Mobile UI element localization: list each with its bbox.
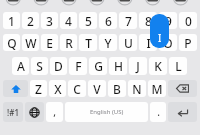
staticText: 7 (125, 13, 132, 29)
button[interactable]: F (69, 57, 87, 75)
staticText: A (17, 58, 25, 74)
staticText: 2 (27, 13, 34, 29)
button[interactable]: B (108, 80, 126, 97)
staticText: English (US) (90, 108, 124, 116)
staticText: 6 (105, 13, 112, 29)
button[interactable]: Z (30, 80, 47, 97)
button[interactable]: Shift (3, 80, 28, 97)
button[interactable]: 0 (179, 12, 197, 29)
staticText: T (85, 35, 92, 51)
staticText: R (65, 35, 73, 51)
staticText: 9 (165, 13, 172, 29)
button[interactable]: K (149, 57, 167, 75)
button[interactable]: M (148, 80, 166, 97)
button[interactable]: I (150, 14, 169, 48)
staticText: !#1 (7, 107, 19, 118)
staticText: D (54, 58, 63, 74)
staticText: H (114, 58, 123, 74)
button[interactable]: R (60, 34, 77, 51)
staticText: 8 (145, 13, 152, 29)
button[interactable]: Toolbar action 7 (173, 0, 189, 7)
button[interactable]: X (49, 80, 66, 97)
button[interactable]: S (31, 57, 48, 75)
button[interactable]: 8 (139, 12, 157, 29)
staticText: N (132, 81, 142, 97)
button[interactable]: C (68, 80, 86, 97)
button[interactable]: V (88, 80, 106, 97)
button[interactable]: Q (3, 34, 20, 51)
button[interactable]: O (159, 34, 177, 51)
button[interactable]: Toolbar action 5 (119, 0, 135, 7)
staticText: 5 (85, 13, 92, 29)
button[interactable]: Y (99, 34, 117, 51)
staticText: , (53, 105, 56, 119)
button[interactable]: Toolbar action 3 (65, 0, 81, 7)
staticText: M (151, 81, 163, 97)
staticText: Z (35, 81, 42, 97)
staticText: O (163, 35, 173, 51)
staticText: I (158, 31, 162, 45)
button[interactable]: 3 (41, 12, 58, 29)
button[interactable]: U (119, 34, 137, 51)
button[interactable]: P (179, 34, 197, 51)
staticText: B (113, 81, 121, 97)
button[interactable]: J (129, 57, 147, 75)
button[interactable]: Toolbar action 4 (92, 0, 108, 7)
staticText: 4 (65, 13, 72, 29)
other: Change language (29, 107, 40, 118)
button[interactable]: . (150, 102, 166, 122)
button[interactable]: 6 (99, 12, 117, 29)
staticText: I (146, 35, 151, 51)
button[interactable]: D (50, 57, 67, 75)
button[interactable]: 9 (159, 12, 177, 29)
staticText: S (36, 58, 43, 74)
button[interactable]: A (12, 57, 29, 75)
staticText: C (73, 81, 81, 97)
button[interactable]: Backspace (168, 80, 197, 97)
button[interactable]: 4 (60, 12, 77, 29)
button[interactable]: E (41, 34, 58, 51)
button[interactable]: G (89, 57, 107, 75)
button[interactable]: !#1 (3, 102, 23, 122)
button[interactable]: Change language (25, 102, 44, 122)
staticText: 3 (46, 13, 53, 29)
staticText: Y (104, 35, 112, 51)
button[interactable]: Enter (168, 102, 197, 122)
other: Backspace (176, 84, 189, 93)
button[interactable]: L (169, 57, 187, 75)
button[interactable]: Toolbar action 6 (146, 0, 162, 7)
button[interactable]: W (22, 34, 39, 51)
other: Shift (10, 83, 22, 95)
button[interactable]: 1 (3, 12, 20, 29)
button[interactable]: , (46, 102, 63, 122)
button[interactable]: T (79, 34, 97, 51)
button[interactable]: 5 (79, 12, 97, 29)
button[interactable]: N (128, 80, 146, 97)
staticText: L (175, 58, 182, 74)
button[interactable]: I (139, 34, 157, 51)
staticText: K (154, 58, 162, 74)
staticText: U (124, 35, 133, 51)
staticText: 1 (8, 13, 15, 29)
staticText: E (46, 35, 53, 51)
staticText: . (157, 105, 160, 119)
staticText: W (25, 35, 37, 51)
button[interactable]: 2 (22, 12, 39, 29)
staticText: G (94, 58, 103, 74)
button[interactable]: Toolbar action 2 (38, 0, 54, 7)
button[interactable]: English (US) (65, 102, 148, 122)
staticText: F (75, 58, 82, 74)
button[interactable]: 7 (119, 12, 137, 29)
other: Enter (177, 108, 189, 117)
staticText: X (54, 81, 62, 97)
staticText: 0 (185, 13, 192, 29)
button[interactable]: H (109, 57, 127, 75)
staticText: Q (7, 35, 17, 51)
staticText: P (184, 35, 192, 51)
button[interactable]: Toolbar action 1 (11, 0, 27, 7)
staticText: V (93, 81, 101, 97)
staticText: J (136, 58, 140, 74)
